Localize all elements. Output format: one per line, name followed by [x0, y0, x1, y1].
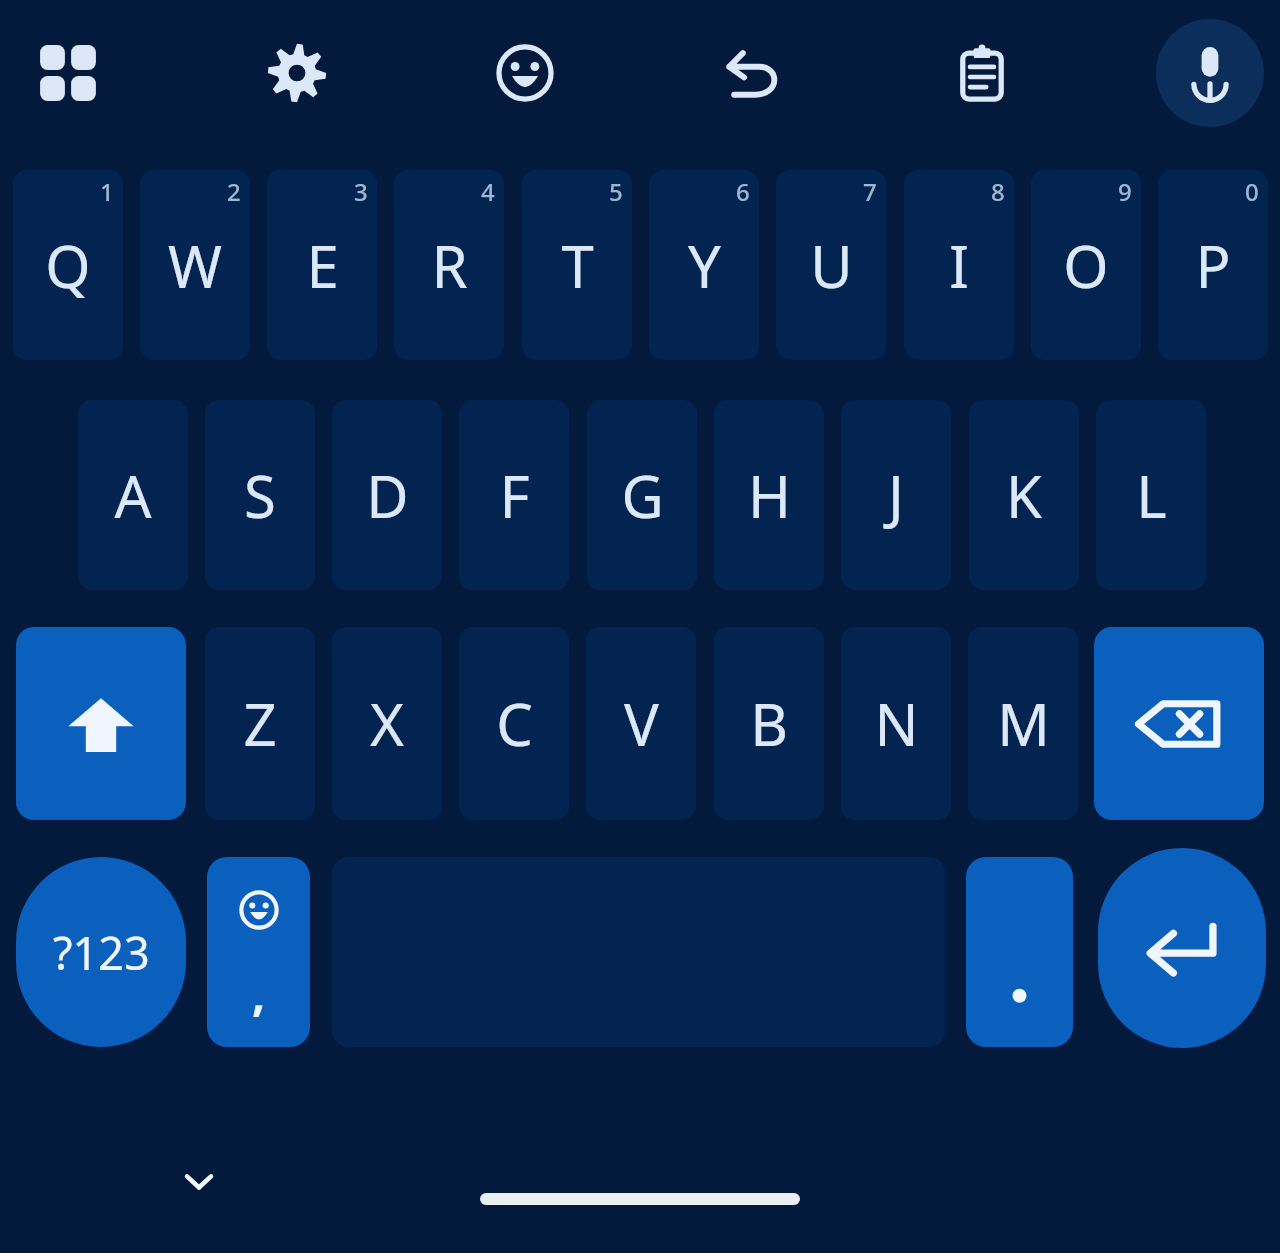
button[interactable]: E [267, 170, 377, 360]
button[interactable]: A [78, 400, 188, 590]
button[interactable]: R [394, 170, 504, 360]
staticText: Z [243, 684, 277, 763]
staticText: Y [688, 226, 721, 305]
button[interactable]: D [332, 400, 442, 590]
staticText: 8 [991, 175, 1005, 208]
staticText: 7 [863, 175, 877, 208]
staticText: F [499, 456, 530, 535]
staticText: 5 [609, 175, 623, 208]
staticText: 6 [736, 175, 750, 208]
staticText: J [888, 456, 904, 535]
button[interactable]: Period [966, 857, 1073, 1047]
staticText: Q [45, 226, 91, 305]
staticText: 1 [100, 175, 114, 208]
button[interactable]: Q [13, 170, 123, 360]
button[interactable]: Backspace [1094, 627, 1264, 820]
button[interactable]: O [1031, 170, 1141, 360]
button[interactable]: Keyboard layouts [16, 21, 120, 125]
button[interactable]: J [841, 400, 951, 590]
button[interactable]: T [522, 170, 632, 360]
button[interactable]: ?123 [16, 857, 186, 1047]
button[interactable]: M [968, 627, 1078, 820]
staticText: S [244, 456, 276, 535]
staticText: P [1195, 226, 1231, 305]
staticText: 0 [1245, 175, 1259, 208]
staticText: R [431, 226, 468, 305]
staticText: N [874, 684, 919, 763]
button[interactable]: Hide keyboard [160, 1144, 238, 1218]
staticText: V [624, 684, 659, 763]
button[interactable]: Z [205, 627, 315, 820]
button[interactable]: P [1158, 170, 1268, 360]
staticText: , [252, 962, 266, 1025]
staticText: A [114, 456, 152, 535]
button[interactable]: W [140, 170, 250, 360]
staticText: 2 [227, 175, 241, 208]
staticText: I [949, 226, 969, 305]
button[interactable]: V [586, 627, 696, 820]
staticText: X [370, 684, 404, 763]
button[interactable]: Comma and emoji [207, 857, 310, 1047]
button[interactable]: K [969, 400, 1079, 590]
button[interactable]: Enter [1098, 848, 1266, 1048]
staticText: 3 [354, 175, 368, 208]
staticText: ?123 [53, 922, 150, 983]
button[interactable]: Emoji [473, 21, 577, 125]
button[interactable]: H [714, 400, 824, 590]
button[interactable]: S [205, 400, 315, 590]
staticText: C [496, 684, 533, 763]
staticText: K [1006, 456, 1042, 535]
button[interactable]: Undo [702, 21, 806, 125]
button[interactable]: B [714, 627, 824, 820]
staticText: U [810, 226, 853, 305]
staticText: 4 [481, 175, 495, 208]
staticText: L [1136, 456, 1167, 535]
staticText: O [1063, 226, 1109, 305]
button[interactable]: Y [649, 170, 759, 360]
button[interactable]: Voice input [1158, 21, 1262, 125]
button[interactable]: N [841, 627, 951, 820]
button[interactable]: Shift [16, 627, 186, 820]
staticText: M [997, 684, 1050, 763]
button[interactable]: Settings [245, 21, 349, 125]
staticText: B [750, 684, 788, 763]
button[interactable]: I [904, 170, 1014, 360]
staticText: H [748, 456, 791, 535]
staticText: D [366, 456, 409, 535]
button[interactable]: X [332, 627, 442, 820]
staticText: G [621, 456, 664, 535]
button[interactable]: F [459, 400, 569, 590]
button[interactable]: G [587, 400, 697, 590]
button[interactable]: Clipboard [930, 21, 1034, 125]
staticText: T [561, 226, 594, 305]
staticText: W [168, 226, 222, 305]
button[interactable]: C [459, 627, 569, 820]
button[interactable]: L [1096, 400, 1206, 590]
staticText: E [306, 226, 339, 305]
staticText: 9 [1118, 175, 1132, 208]
button[interactable]: U [776, 170, 886, 360]
